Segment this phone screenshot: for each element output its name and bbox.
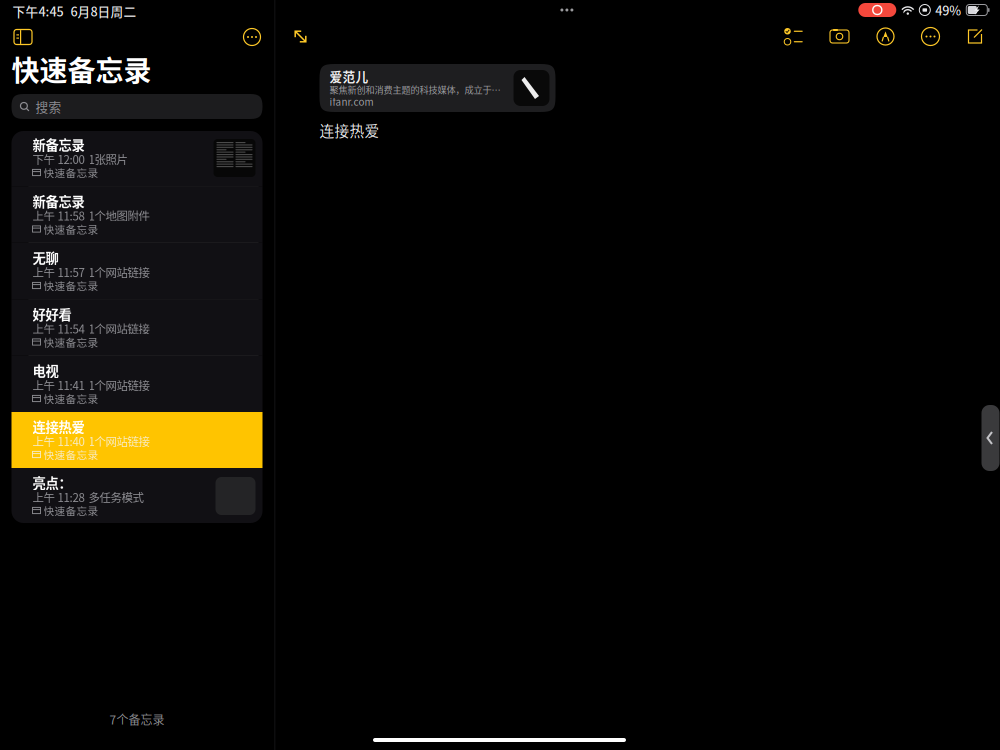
staticText: 搜索 <box>35 97 61 116</box>
button[interactable]: 爱范儿 <box>319 64 555 112</box>
staticText: 快速备忘录 <box>43 221 98 237</box>
staticText: 连接热爱 <box>319 119 379 141</box>
staticText: 电视 <box>32 361 58 380</box>
staticText: 快速备忘录 <box>11 49 151 89</box>
staticText: 无聊 <box>32 248 58 267</box>
staticText: 上午 11:28 <box>32 489 84 505</box>
staticText: 快速备忘录 <box>43 447 98 462</box>
staticText: 新备忘录 <box>32 135 84 154</box>
staticText: 快速备忘录 <box>43 334 98 350</box>
button[interactable]: More <box>921 27 939 45</box>
button[interactable]: New Note <box>966 28 983 45</box>
button[interactable]: 无聊 <box>11 243 262 299</box>
staticText: 新备忘录 <box>32 191 84 211</box>
staticText: 亮点： <box>32 473 71 492</box>
staticText: 上午 11:40 <box>32 433 84 449</box>
staticText: 上午 11:54 <box>32 320 84 337</box>
staticText: 下午 12:00 <box>32 151 84 167</box>
staticText: 6月8日周二 <box>70 2 136 20</box>
staticText: 1个网站链接 <box>88 433 149 449</box>
button[interactable]: 亮点： <box>11 468 262 524</box>
staticText: 连接热爱 <box>32 417 84 436</box>
staticText: 快速备忘录 <box>43 503 98 518</box>
staticText: ifanr.com <box>329 94 373 109</box>
button[interactable]: Camera <box>829 28 849 44</box>
staticText: 上午 11:41 <box>32 377 84 393</box>
staticText: 多任务模式 <box>88 489 143 505</box>
staticText: 7个备忘录 <box>109 711 164 728</box>
staticText: 上午 11:58 <box>32 207 84 224</box>
staticText: 1张照片 <box>88 151 127 167</box>
button[interactable]: Show Slide Over <box>981 405 999 471</box>
staticText: 好好看 <box>32 304 71 324</box>
staticText: 上午 11:57 <box>32 264 84 280</box>
staticText: 快速备忘录 <box>43 391 98 406</box>
button[interactable]: Checklist <box>784 28 802 44</box>
staticText: 1个网站链接 <box>88 377 149 393</box>
staticText: 爱范儿 <box>329 67 368 85</box>
staticText: 聚焦新创和消费主题的科技媒体，成立于… <box>329 83 500 96</box>
staticText: 1个网站链接 <box>88 264 149 280</box>
button[interactable]: 新备忘录 <box>11 130 262 186</box>
button[interactable]: Markup <box>876 27 894 45</box>
button[interactable]: 新备忘录 <box>11 186 262 242</box>
staticText: 1个地图附件 <box>88 207 149 224</box>
button[interactable]: 连接热爱 <box>11 412 262 468</box>
button[interactable]: More <box>238 23 265 50</box>
staticText: 下午4:45 <box>12 2 63 20</box>
staticText: 1个网站链接 <box>88 320 149 337</box>
button[interactable]: 好好看 <box>11 299 262 355</box>
button[interactable]: Expand <box>285 21 315 51</box>
staticText: 快速备忘录 <box>43 278 98 293</box>
button[interactable]: Show Sidebar <box>8 24 37 50</box>
staticText: 49% <box>935 1 961 19</box>
staticText: 快速备忘录 <box>43 165 98 180</box>
button[interactable]: 电视 <box>11 356 262 412</box>
